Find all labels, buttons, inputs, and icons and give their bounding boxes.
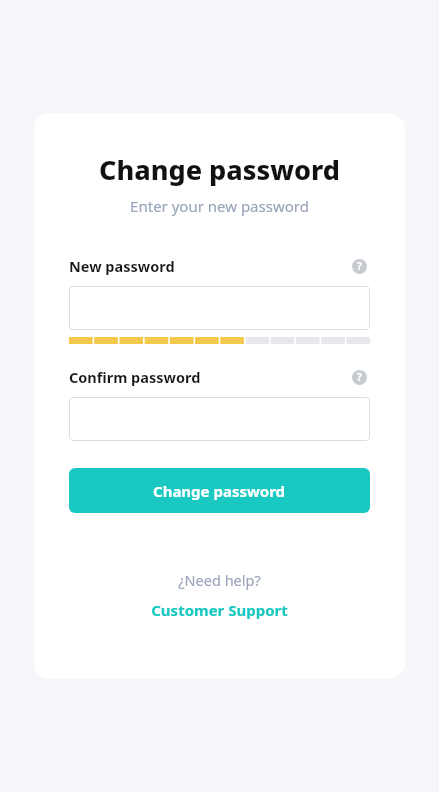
staticText: Confirm password — [69, 367, 201, 387]
button[interactable] — [69, 286, 370, 330]
staticText: ¿Need help? — [34, 570, 405, 590]
staticText: Change password — [153, 481, 286, 501]
staticText: ? — [357, 259, 362, 273]
button[interactable]: Help about confirm password — [348, 366, 370, 388]
staticText: Change password — [34, 151, 405, 188]
button[interactable]: Change password — [69, 468, 370, 513]
staticText: Customer Support — [151, 600, 288, 620]
button[interactable] — [69, 397, 370, 441]
button[interactable]: Help about new password — [348, 255, 370, 277]
staticText: ? — [357, 370, 362, 384]
button[interactable]: Customer Support — [145, 598, 294, 622]
staticText: New password — [69, 256, 175, 276]
staticText: Enter your new password — [34, 196, 405, 216]
